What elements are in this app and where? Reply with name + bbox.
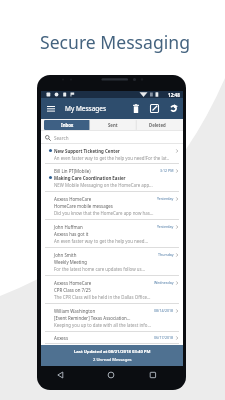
staticText: CPR Class on 7/25 <box>54 287 91 293</box>
staticText: Axxess HomeCare <box>54 196 92 202</box>
button[interactable]: Axxess <box>41 332 183 344</box>
staticText: Inbox <box>61 122 74 128</box>
staticText: Last Updated at 08/21/2018 03:40 PM <box>74 349 151 355</box>
staticText: Keeping you up to date with all the late… <box>54 322 151 328</box>
staticText: HomeCare mobile messages <box>54 203 113 209</box>
staticText: 08/14/2018 <box>154 308 174 313</box>
staticText: An even faster way to get the help you n… <box>54 238 149 244</box>
staticText: Axxess has got it <box>54 231 89 237</box>
button[interactable]: Refresh <box>166 98 181 119</box>
staticText: Search <box>54 135 69 141</box>
staticText: Bill Lin PT(Mobile) <box>54 168 91 174</box>
button[interactable]: Deleted <box>135 120 180 130</box>
staticText: Weekly Meeting <box>54 259 87 265</box>
button[interactable]: New Support Ticketing Center <box>41 144 183 164</box>
staticText: Yesterday <box>157 224 174 229</box>
staticText: Yesterday <box>157 196 174 201</box>
staticText: Wednesday <box>154 280 174 285</box>
staticText: John Smith <box>54 252 77 258</box>
staticText: New Support Ticketing Center <box>54 148 120 154</box>
staticText: Did you know that the HomeCare app now h… <box>54 210 154 216</box>
button[interactable]: Sent <box>90 120 135 130</box>
button[interactable]: Bill Lin PT(Mobile) <box>41 164 183 192</box>
staticText: My Messages <box>65 104 107 113</box>
staticText: Secure Messaging <box>40 30 190 54</box>
staticText: 06/17/2018 <box>154 335 174 340</box>
staticText: NEW Mobile Messaging on the HomeCare app… <box>54 182 153 188</box>
staticText: John Huffman <box>54 224 83 230</box>
staticText: 12:48 <box>168 92 180 98</box>
button[interactable]: John Smith <box>41 248 183 276</box>
staticText: Axxess <box>54 335 69 341</box>
staticText: 2 Unread Messages <box>93 357 132 363</box>
staticText: Thursday <box>158 252 174 257</box>
staticText: [Event Reminder] Texas Association... <box>54 315 131 321</box>
button[interactable]: William Washington <box>41 304 183 332</box>
staticText: The CPR Class will be held in the Dallas… <box>54 294 151 300</box>
button[interactable]: Compose <box>147 98 161 119</box>
staticText: An even faster way to get the help you n… <box>54 155 170 161</box>
staticText: Axxess HomeCare <box>54 280 92 286</box>
button[interactable]: Axxess HomeCare <box>41 192 183 220</box>
staticText: For the latest home care updates follow … <box>54 266 146 272</box>
button[interactable]: Delete <box>129 98 143 119</box>
staticText: Deleted <box>149 122 166 128</box>
staticText: William Washington <box>54 308 96 314</box>
button[interactable]: John Huffman <box>41 220 183 248</box>
staticText: Making Care Coordination Easier <box>54 175 126 181</box>
button[interactable]: Menu <box>43 98 59 119</box>
button[interactable]: Inbox <box>44 120 90 130</box>
staticText: 3:12 PM <box>160 168 174 173</box>
staticText: Sent <box>108 122 118 128</box>
button[interactable]: Axxess HomeCare <box>41 276 183 304</box>
